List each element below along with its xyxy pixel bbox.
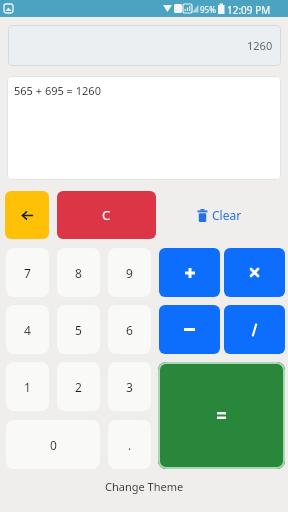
staticText: 2: [75, 379, 82, 395]
staticText: 3: [126, 379, 133, 395]
staticText: 565 + 695 = 1260: [14, 83, 101, 98]
staticText: 7: [24, 265, 31, 281]
button[interactable]: 6: [108, 305, 151, 354]
button[interactable]: .: [108, 420, 151, 469]
button[interactable]: 4: [6, 305, 49, 354]
staticText: 95%: [200, 4, 216, 15]
staticText: 9: [126, 265, 133, 281]
staticText: Clear: [212, 207, 242, 223]
button[interactable]: 1: [6, 362, 49, 411]
button[interactable]: [158, 362, 285, 469]
button[interactable]: 7: [6, 248, 49, 297]
staticText: 1: [24, 379, 31, 395]
button[interactable]: [159, 305, 220, 354]
staticText: 1260: [247, 38, 273, 53]
staticText: 5: [75, 322, 82, 338]
button[interactable]: 9: [108, 248, 151, 297]
button[interactable]: 8: [57, 248, 100, 297]
button[interactable]: Clear: [193, 203, 245, 227]
button[interactable]: 2: [57, 362, 100, 411]
button[interactable]: 5: [57, 305, 100, 354]
staticText: .: [128, 437, 132, 453]
button[interactable]: [159, 248, 220, 297]
button[interactable]: Change Theme: [0, 476, 288, 496]
staticText: Change Theme: [105, 479, 184, 494]
staticText: 0: [50, 437, 57, 453]
button[interactable]: [224, 248, 285, 297]
button[interactable]: 0: [6, 420, 100, 469]
staticText: 12:09 PM: [227, 3, 271, 17]
button[interactable]: [224, 305, 285, 354]
button[interactable]: 3: [108, 362, 151, 411]
staticText: 4: [24, 322, 31, 338]
staticText: 6: [126, 322, 133, 338]
staticText: C: [102, 206, 111, 224]
button[interactable]: C: [57, 191, 156, 239]
button[interactable]: [5, 191, 49, 239]
staticText: 8: [75, 265, 82, 281]
